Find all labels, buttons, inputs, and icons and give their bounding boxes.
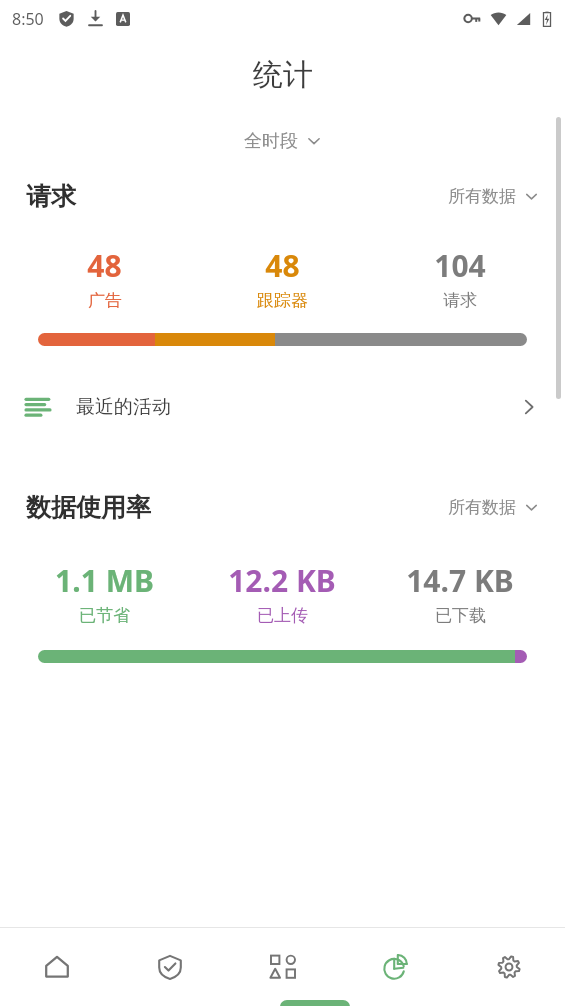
staticText: 48 [265, 245, 300, 286]
staticText: 12.2 KB [228, 560, 336, 601]
button[interactable]: Settings [452, 928, 565, 1006]
button[interactable]: Protection [113, 928, 226, 1006]
staticText: 104 [434, 245, 486, 286]
staticText: 全时段 [244, 130, 298, 153]
button[interactable]: 全时段 [0, 113, 565, 169]
button[interactable]: 所有数据 [448, 186, 539, 207]
staticText: 所有数据 [448, 497, 516, 518]
staticText: 数据使用率 [26, 492, 151, 523]
staticText: 统计 [253, 56, 313, 94]
staticText: 已节省 [79, 605, 130, 626]
button[interactable]: Apps [226, 928, 339, 1006]
staticText: 48 [87, 245, 122, 286]
staticText: 请求 [443, 290, 477, 311]
button[interactable]: 所有数据 [448, 497, 539, 518]
button[interactable]: Statistics [339, 928, 452, 1006]
staticText: 最近的活动 [76, 395, 171, 419]
staticText: 请求 [26, 181, 76, 212]
staticText: 跟踪器 [257, 290, 308, 311]
staticText: 1.1 MB [55, 560, 154, 601]
staticText: 所有数据 [448, 186, 516, 207]
staticText: 14.7 KB [406, 560, 514, 601]
button[interactable]: Home [0, 928, 113, 1006]
button[interactable]: 最近的活动 [0, 378, 565, 436]
staticText: 已上传 [257, 605, 308, 626]
staticText: 广告 [88, 290, 122, 311]
staticText: 已下载 [435, 605, 486, 626]
staticText: 8:50 [12, 8, 44, 30]
